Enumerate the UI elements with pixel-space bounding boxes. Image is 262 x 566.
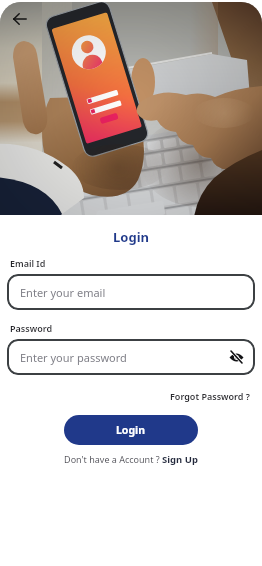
button[interactable]: Login: [64, 415, 198, 445]
button[interactable]: Enter your password: [7, 339, 255, 375]
button[interactable]: Forgot Password ?: [170, 390, 250, 402]
staticText: Password: [10, 322, 53, 334]
button[interactable]: Enter your email: [7, 274, 255, 310]
staticText: Login: [0, 228, 262, 246]
button[interactable]: [13, 13, 27, 25]
staticText: Login: [116, 423, 146, 437]
staticText: Email Id: [10, 257, 46, 269]
staticText: Enter your password: [20, 350, 127, 365]
button[interactable]: Don't have a Account ? Sign Up: [64, 453, 198, 466]
staticText: Enter your email: [20, 285, 106, 300]
